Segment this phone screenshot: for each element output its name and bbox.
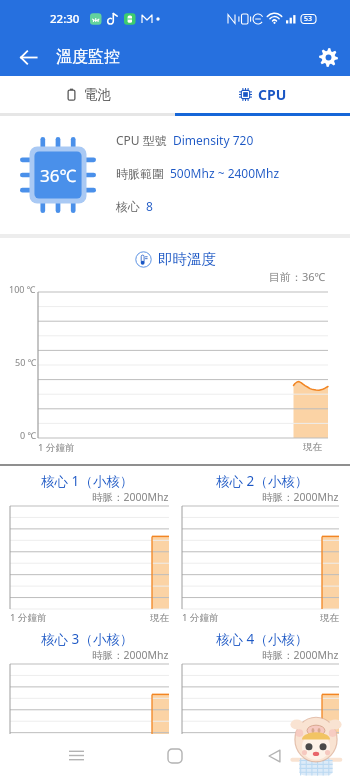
staticText: 22:30 — [50, 11, 80, 27]
button[interactable]: CPU — [175, 76, 350, 113]
staticText: 8 — [146, 198, 153, 214]
staticText: 現在 — [320, 612, 339, 624]
staticText: 電池 — [84, 86, 111, 103]
staticText: 核心 — [116, 199, 140, 214]
staticText: 核心 4（小核） — [216, 630, 309, 648]
staticText: 目前：36℃ — [269, 269, 326, 284]
staticText: CPU 型號 — [116, 132, 167, 148]
staticText: 時脈：2000Mhz — [92, 648, 169, 662]
staticText: 500Mhz ~ 2400Mhz — [170, 165, 280, 181]
button[interactable]: Settings — [306, 38, 350, 76]
button[interactable]: Back — [251, 734, 299, 777]
staticText: 36℃ — [40, 164, 77, 187]
staticText: CPU — [258, 85, 287, 104]
staticText: 50 ℃ — [15, 356, 37, 368]
staticText: 現在 — [150, 612, 169, 624]
staticText: 即時溫度 — [158, 250, 216, 268]
staticText: 1 分鐘前 — [10, 611, 47, 624]
staticText: 現在 — [303, 441, 322, 453]
staticText: 核心 3（小核） — [41, 630, 134, 648]
staticText: 100 ℃ — [9, 283, 36, 295]
staticText: 核心 1（小核） — [41, 472, 134, 490]
staticText: 核心 2（小核） — [216, 472, 309, 490]
staticText: 0 ℃ — [20, 429, 37, 441]
staticText: 時脈：2000Mhz — [262, 648, 339, 662]
staticText: 53 — [304, 14, 313, 24]
staticText: 時脈範圍 — [116, 166, 164, 181]
button[interactable]: 電池 — [0, 76, 175, 113]
staticText: 1 分鐘前 — [38, 441, 75, 454]
button[interactable]: Home — [151, 734, 199, 777]
button[interactable]: Back — [0, 38, 56, 76]
staticText: 1 分鐘前 — [182, 611, 219, 624]
staticText: Dimensity 720 — [173, 132, 254, 148]
staticText: 時脈：2000Mhz — [92, 490, 169, 504]
staticText: 溫度監控 — [56, 47, 120, 67]
button[interactable]: Recent apps — [52, 734, 100, 777]
staticText: 時脈：2000Mhz — [262, 490, 339, 504]
